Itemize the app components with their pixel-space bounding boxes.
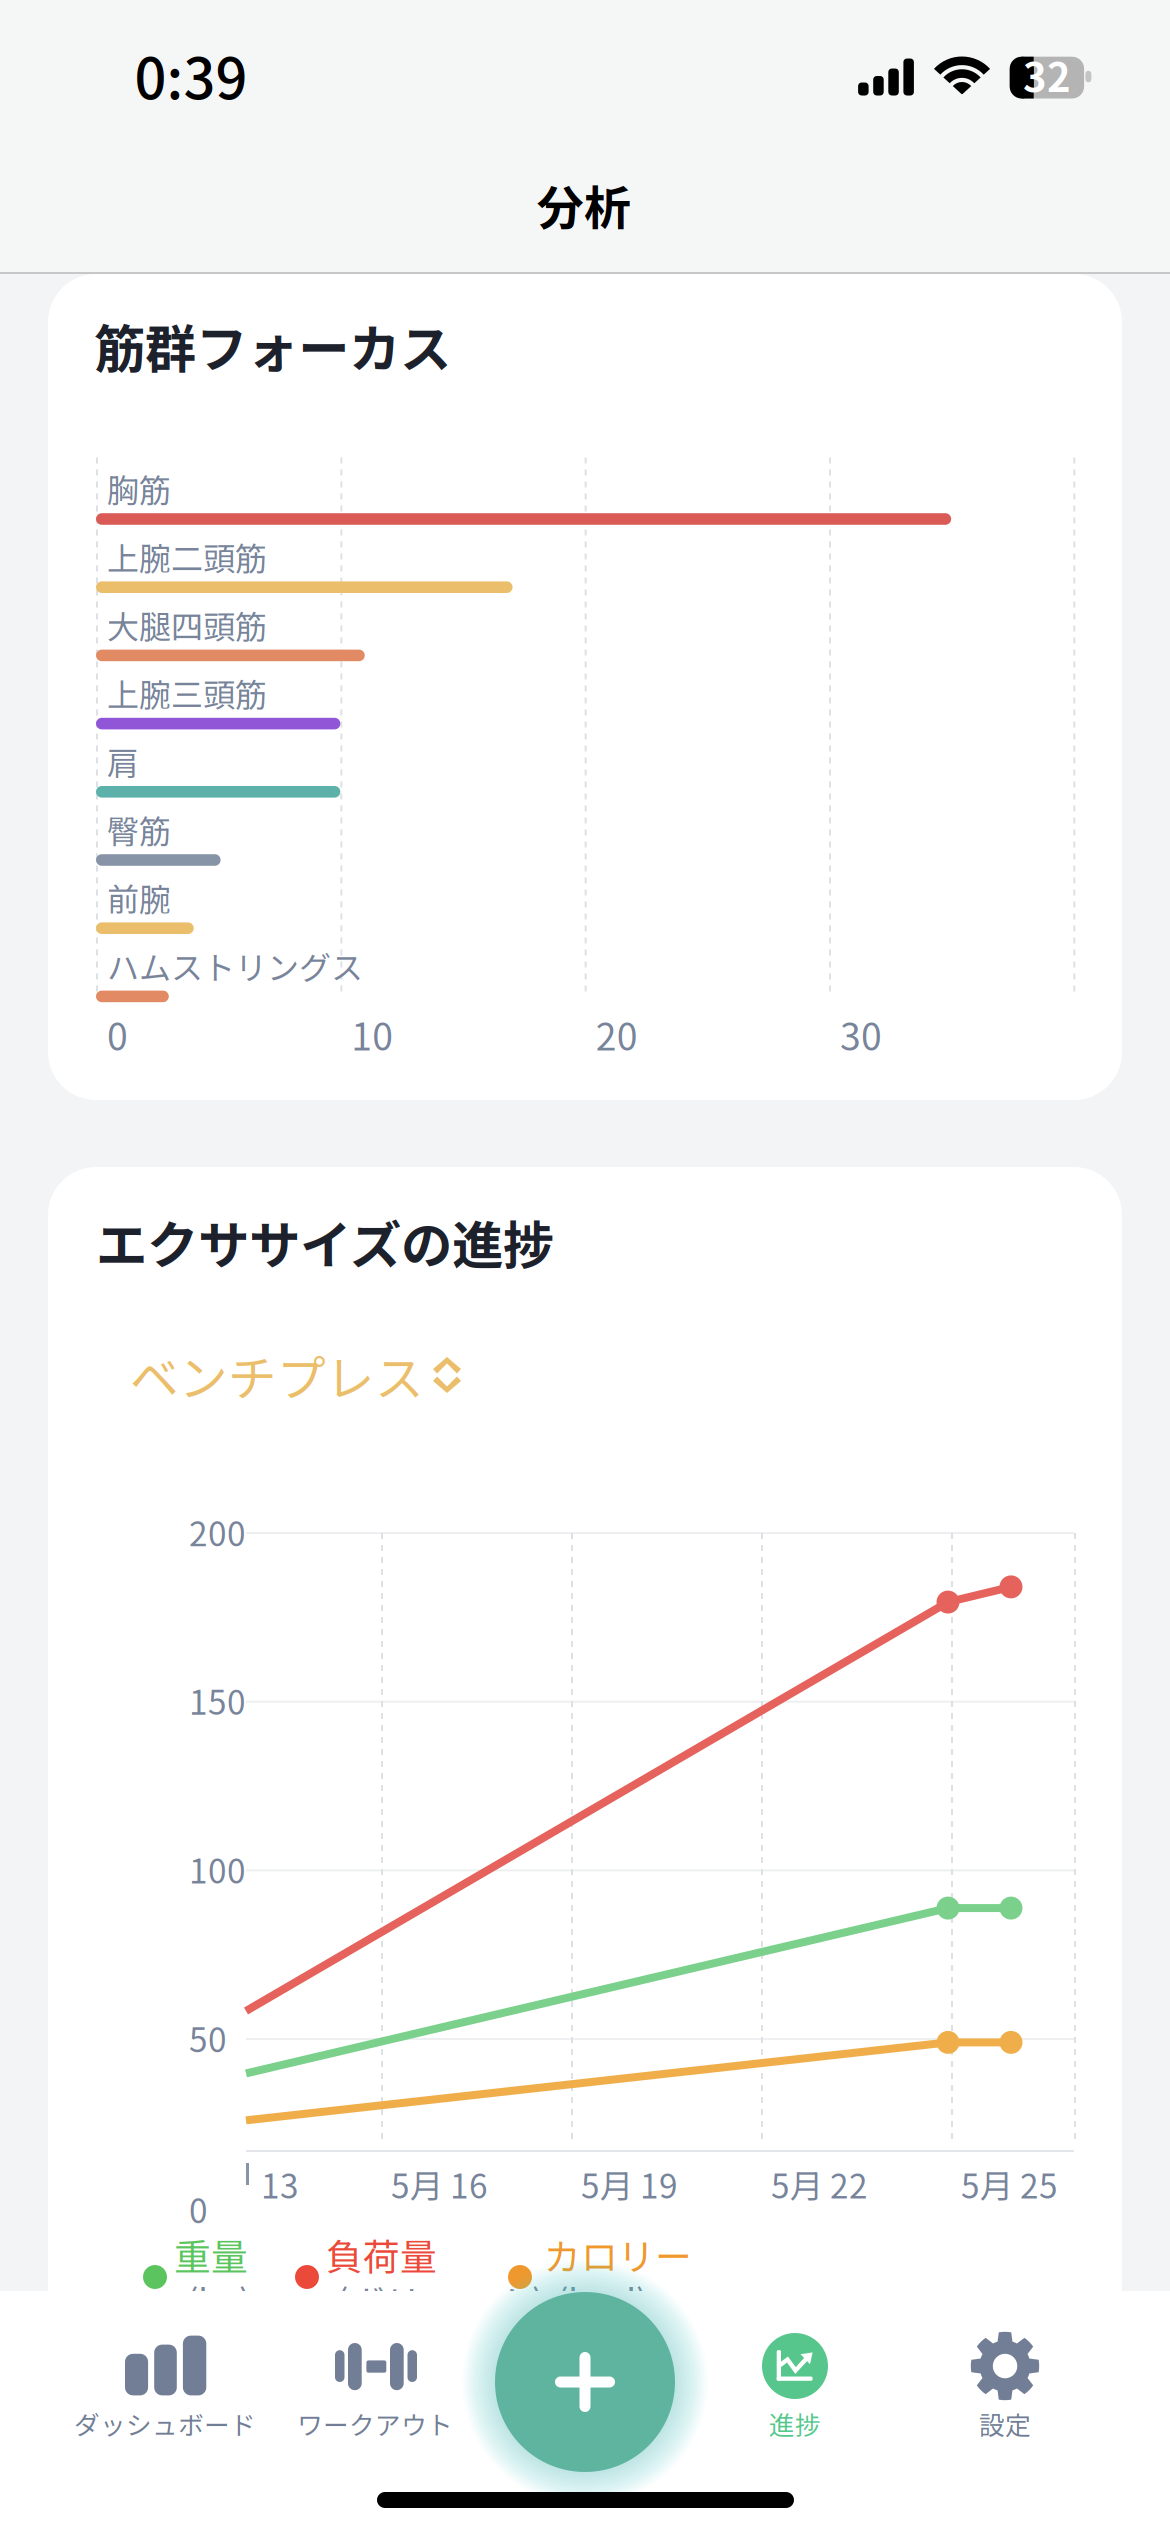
staticText: 臀筋 [107,806,171,852]
staticText: 32 [1023,46,1071,103]
button[interactable]: 進捗 [690,2330,900,2455]
staticText: 5月 19 [581,2160,678,2208]
staticText: 筋群フォーカス [94,308,451,382]
staticText: 設定 [979,2405,1031,2442]
staticText: 肩 [107,738,139,784]
staticText: 5月 16 [391,2160,488,2208]
staticText: 重量 [174,2228,248,2281]
staticText: (kg) [186,2274,251,2328]
button[interactable]: Add workout [495,2292,675,2472]
button[interactable]: ダッシュボード [60,2330,270,2455]
staticText: 20 [596,1007,638,1061]
staticText: 150 [189,1676,246,1724]
staticText: 前腕 [107,874,171,921]
button[interactable]: ベンチプレス [130,1340,490,1410]
staticText: エクササイズの進捗 [96,1204,554,1279]
staticText: 13 [261,2160,299,2208]
staticText: 大腿四頭筋 [107,601,267,648]
staticText: ダッシュボード [74,2405,256,2442]
staticText: ハムストリングス [107,942,363,989]
button[interactable]: 設定 [900,2330,1110,2455]
staticText: 0:39 [134,34,247,115]
staticText: (ボリューム) [336,2274,544,2328]
staticText: 30 [840,1007,882,1061]
staticText: 上腕三頭筋 [107,670,267,716]
staticText: 10 [351,1007,393,1061]
staticText: 胸筋 [107,465,171,511]
staticText: 0 [189,2184,208,2233]
staticText: カロリー [544,2228,692,2281]
staticText: ベンチプレス [130,1340,424,1410]
staticText: 0 [107,1007,128,1061]
staticText: 上腕二頭筋 [107,533,267,580]
staticText: 負荷量 [326,2228,437,2281]
staticText: 100 [189,1845,246,1893]
staticText: (kcal) [556,2274,648,2328]
staticText: 分析 [537,171,631,239]
staticText: 5月 22 [771,2160,868,2208]
staticText: ワークアウト [297,2405,453,2442]
staticText: 200 [189,1508,246,1556]
button[interactable]: ワークアウト [270,2330,480,2455]
staticText: 50 [189,2013,227,2062]
staticText: 5月 25 [961,2160,1058,2208]
staticText: 進捗 [769,2405,821,2442]
